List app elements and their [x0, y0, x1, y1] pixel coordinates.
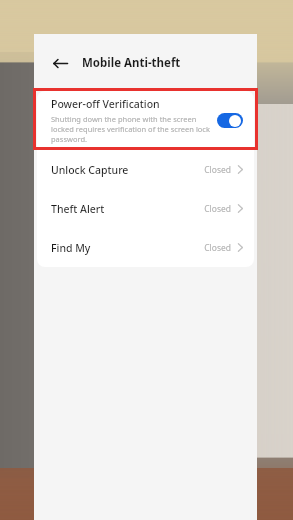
button[interactable]: Find My	[37, 228, 254, 267]
button[interactable]: Back	[47, 50, 73, 76]
staticText: Mobile Anti-theft	[82, 55, 181, 71]
button[interactable]: Theft Alert	[37, 189, 254, 228]
button[interactable]: Unlock Capture	[37, 150, 254, 189]
button[interactable]: Power-off Verification toggle, on	[217, 113, 243, 128]
staticText: Theft Alert	[51, 202, 204, 216]
staticText: Power-off Verification	[51, 97, 160, 111]
button[interactable]: Power-off Verification	[37, 91, 254, 150]
staticText: Closed	[204, 164, 231, 176]
staticText: Closed	[204, 203, 231, 215]
staticText: Find My	[51, 241, 204, 255]
staticText: Closed	[204, 242, 231, 254]
staticText: Shutting down the phone with the screen …	[51, 114, 211, 144]
staticText: Unlock Capture	[51, 163, 204, 177]
